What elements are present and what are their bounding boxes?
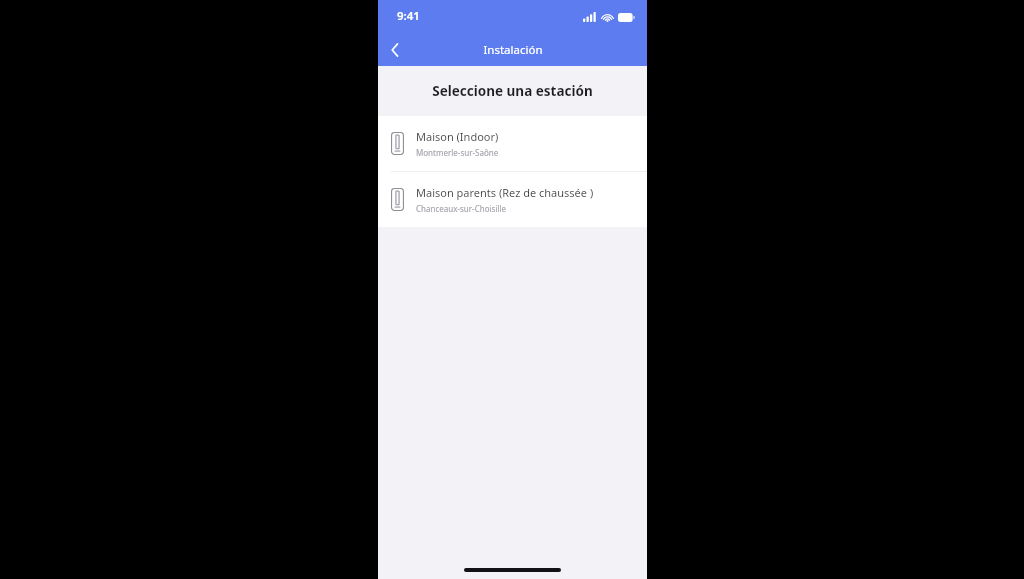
button[interactable]: Maison parents (Rez de chaussée ) — [378, 172, 647, 227]
staticText: Maison (Indoor) — [416, 129, 499, 144]
button[interactable]: Back — [378, 33, 412, 66]
staticText: Seleccione una estación — [432, 82, 593, 100]
staticText: Instalación — [483, 42, 543, 58]
staticText: Chanceaux-sur-Choisille — [416, 203, 507, 214]
staticText: Maison parents (Rez de chaussée ) — [416, 185, 594, 200]
staticText: 9:41 — [397, 8, 420, 24]
staticText: Montmerle-sur-Saône — [416, 147, 499, 158]
button[interactable]: Maison (Indoor) — [378, 116, 647, 171]
